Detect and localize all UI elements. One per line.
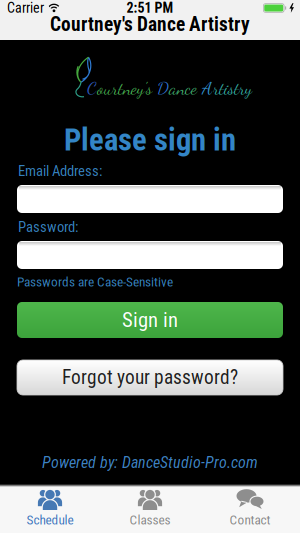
staticText: 2:51 PM	[126, 0, 173, 16]
staticText: Forgot your password?	[62, 366, 238, 389]
staticText: Password:	[18, 218, 78, 236]
button[interactable]: Email Address	[0, 185, 300, 213]
staticText: A	[202, 77, 213, 99]
staticText: Sign in	[122, 308, 178, 332]
button[interactable]: Classes	[100, 487, 200, 528]
button[interactable]: Contact	[200, 487, 300, 528]
staticText: Contact	[229, 512, 270, 528]
button[interactable]: Sign in	[0, 302, 300, 338]
staticText: Classes	[129, 512, 170, 528]
staticText: Carrier	[7, 0, 44, 16]
staticText: D	[157, 77, 169, 99]
staticText: C	[87, 77, 97, 99]
button[interactable]: Forgot your password?	[0, 360, 300, 395]
staticText: Email Address:	[18, 162, 102, 180]
staticText: Passwords are Case-Sensitive	[17, 274, 173, 290]
staticText: rtistry	[213, 77, 252, 99]
staticText: Powered by: DanceStudio-Pro.com	[42, 453, 258, 472]
staticText: Courtney's Dance Artistry	[50, 13, 250, 36]
staticText: ance	[169, 77, 202, 99]
staticText: Schedule	[26, 512, 73, 528]
staticText: ourtney's	[97, 77, 157, 99]
button[interactable]: Powered by: DanceStudio-Pro.com	[42, 455, 258, 470]
staticText: Please sign in	[64, 122, 236, 158]
button[interactable]: Password	[0, 241, 300, 269]
button[interactable]: Schedule	[0, 487, 100, 528]
